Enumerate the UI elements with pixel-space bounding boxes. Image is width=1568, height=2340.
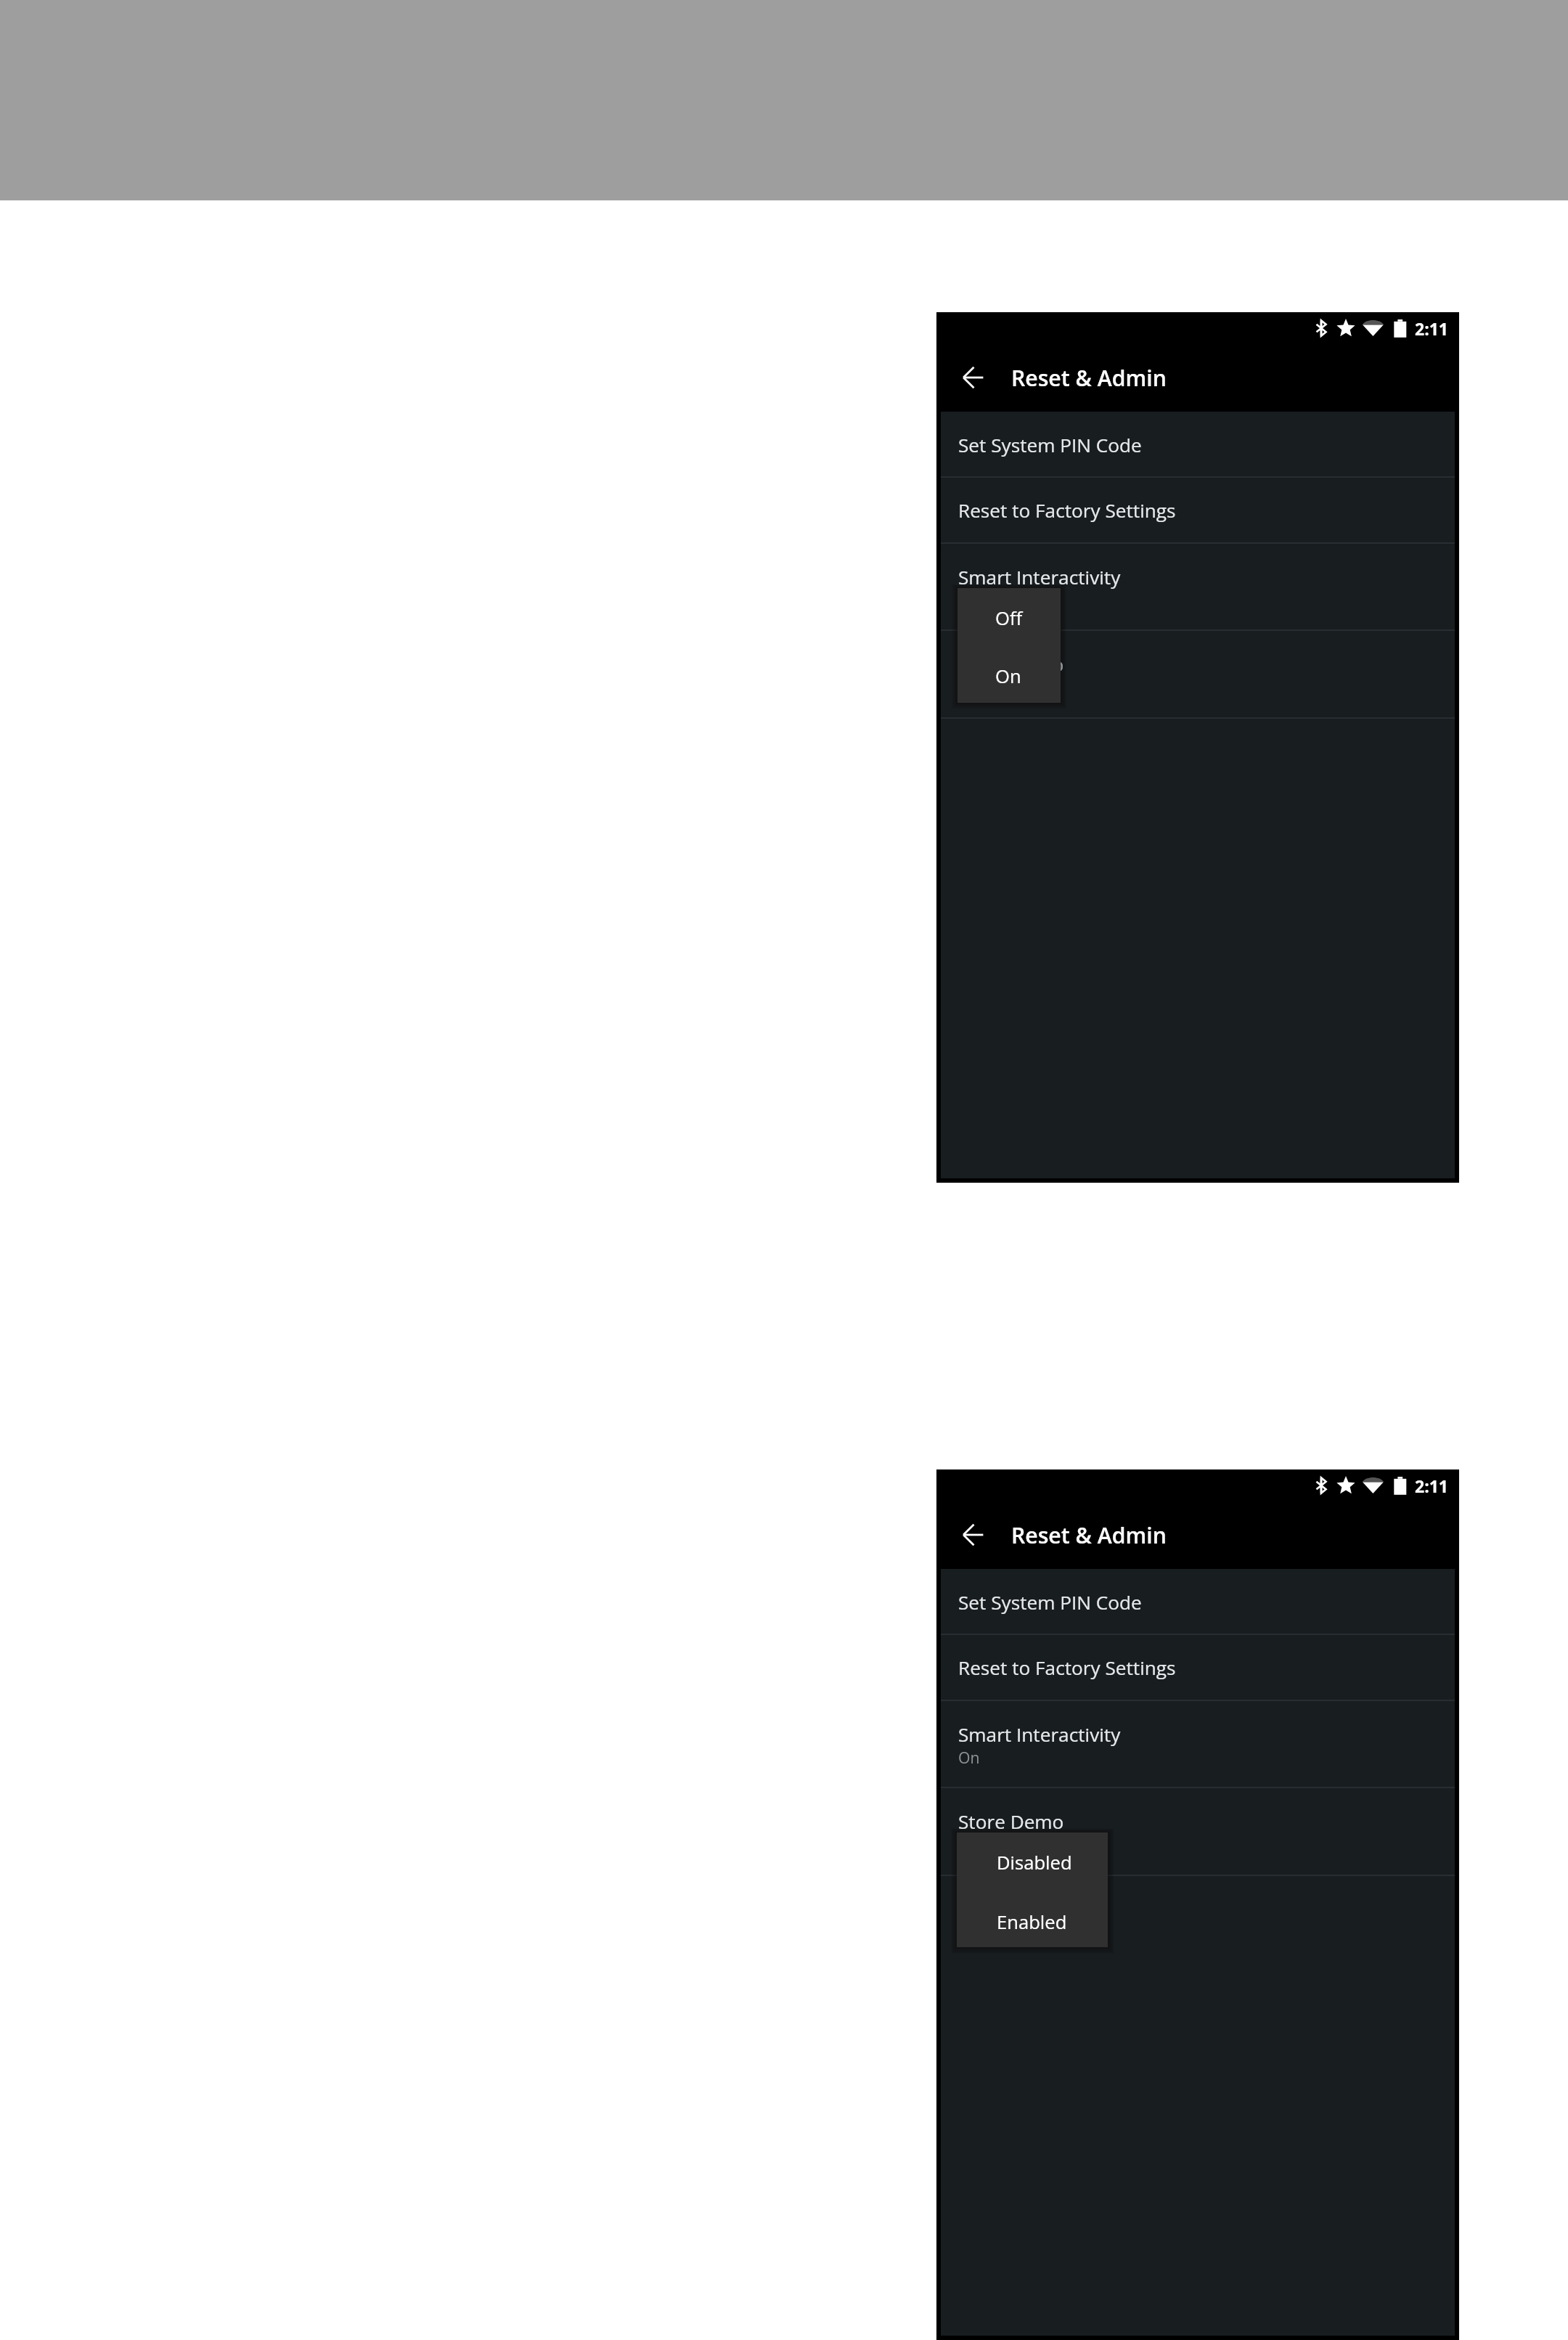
button[interactable]: On (957, 645, 1061, 698)
staticText: Store Demo (958, 1809, 1064, 1835)
button[interactable]: Navigate up (952, 1515, 993, 1555)
staticText: Disabled (997, 1850, 1072, 1875)
staticText: Reset to Factory Settings (958, 1655, 1176, 1681)
staticText: Smart Interactivity (958, 1721, 1121, 1748)
button[interactable]: Off (957, 592, 1061, 645)
staticText: Enabled (997, 1909, 1067, 1935)
staticText: On (958, 1747, 980, 1768)
button[interactable]: Smart Interactivity (941, 544, 1455, 630)
staticText: Set System PIN Code (958, 1589, 1142, 1615)
staticText: Smart Interactivity (958, 564, 1121, 590)
button[interactable]: Set System PIN Code (941, 412, 1455, 476)
staticText: Off (995, 606, 1023, 631)
staticText: On (995, 664, 1021, 689)
button[interactable]: Store Demo (941, 631, 1455, 717)
button[interactable]: Store Demo (941, 1788, 1455, 1875)
button[interactable]: Reset to Factory Settings (941, 477, 1455, 542)
button[interactable]: Navigate up (952, 357, 993, 398)
staticText: Store Demo (958, 651, 1064, 677)
button[interactable]: Set System PIN Code (941, 1569, 1455, 1634)
button[interactable]: Disabled (957, 1837, 1108, 1890)
button[interactable]: Reset to Factory Settings (941, 1634, 1455, 1700)
staticText: Set System PIN Code (958, 432, 1142, 458)
staticText: 2:11 (1415, 1475, 1449, 1497)
button[interactable]: Smart Interactivity (941, 1701, 1455, 1787)
staticText: Reset & Admin (1011, 363, 1167, 393)
staticText: Reset & Admin (1011, 1520, 1167, 1550)
staticText: Reset to Factory Settings (958, 497, 1176, 523)
staticText: 2:11 (1415, 317, 1449, 340)
button[interactable]: Enabled (957, 1890, 1108, 1943)
